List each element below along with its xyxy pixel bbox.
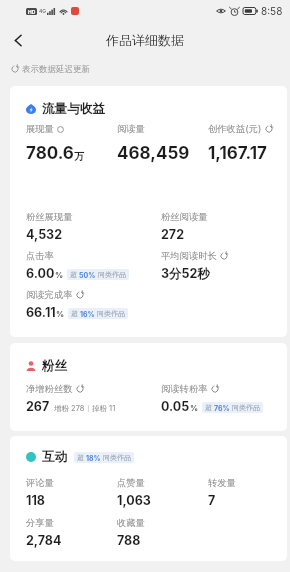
staticText: 3分52秒 [161, 266, 210, 282]
staticText: % [55, 270, 64, 280]
staticText: 粉丝展现量 [26, 211, 73, 223]
staticText: 6.00 [26, 266, 55, 281]
staticText: 掉粉 11 [92, 404, 116, 413]
staticText: 66.11 [26, 305, 56, 320]
staticText: 超 [205, 403, 212, 412]
staticText: 超 [71, 309, 78, 318]
staticText: 4,532 [26, 227, 63, 242]
staticText: 同类作品 [232, 403, 260, 412]
staticText: 18% [86, 454, 101, 462]
staticText: 互动 [42, 449, 68, 465]
button[interactable]: Back [2, 24, 34, 56]
staticText: 780.6 [26, 143, 74, 164]
staticText: 作品详细数据 [106, 32, 184, 48]
staticText: 267 [26, 399, 50, 414]
staticText: % [190, 403, 199, 413]
button[interactable]: 表示数据延迟更新 [11, 58, 290, 80]
staticText: 阅读完成率 [26, 289, 73, 301]
button[interactable]: 流量与收益 [26, 101, 105, 117]
staticText: 7 [208, 493, 216, 508]
staticText: 净增粉丝数 [26, 383, 73, 395]
staticText: 平均阅读时长 [161, 250, 217, 262]
staticText: 8:58 [261, 5, 283, 17]
staticText: 16% [80, 310, 95, 318]
staticText: 表示数据延迟更新 [22, 64, 90, 75]
staticText: 评论量 [26, 477, 54, 489]
staticText: 788 [117, 533, 141, 548]
button[interactable]: 粉丝 [26, 358, 68, 374]
staticText: 50% [79, 271, 96, 279]
staticText: 分享量 [26, 517, 54, 529]
staticText: 阅读量 [117, 123, 145, 135]
staticText: 点赞量 [117, 477, 145, 489]
staticText: 粉丝阅读量 [161, 211, 208, 223]
staticText: 1,063 [117, 493, 151, 508]
staticText: % [56, 309, 65, 319]
staticText: 272 [161, 227, 185, 242]
staticText: 0.05 [161, 399, 190, 414]
staticText: HD [28, 9, 36, 15]
staticText: 468,459 [117, 143, 190, 164]
staticText: 2,784 [26, 533, 62, 548]
staticText: 点击率 [26, 250, 54, 262]
staticText: 阅读转粉率 [161, 383, 208, 395]
staticText: 同类作品 [103, 453, 131, 462]
staticText: 76% [214, 404, 230, 412]
staticText: 同类作品 [97, 309, 125, 318]
staticText: 4G [39, 8, 47, 14]
staticText: 创作收益(元) [208, 123, 262, 135]
staticText: 展现量 [26, 123, 54, 135]
staticText: 粉丝 [42, 358, 68, 374]
staticText: 118 [26, 493, 45, 508]
button[interactable]: 互动 [26, 449, 134, 465]
staticText: 万 [74, 150, 84, 163]
staticText: 超 [70, 270, 77, 279]
staticText: 转发量 [208, 477, 236, 489]
staticText: 收藏量 [117, 517, 145, 529]
staticText: 流量与收益 [42, 101, 105, 117]
staticText: 增粉 278 [54, 404, 85, 413]
staticText: 1,167.17 [208, 143, 267, 164]
staticText: 同类作品 [98, 270, 126, 279]
staticText: 超 [77, 453, 84, 462]
